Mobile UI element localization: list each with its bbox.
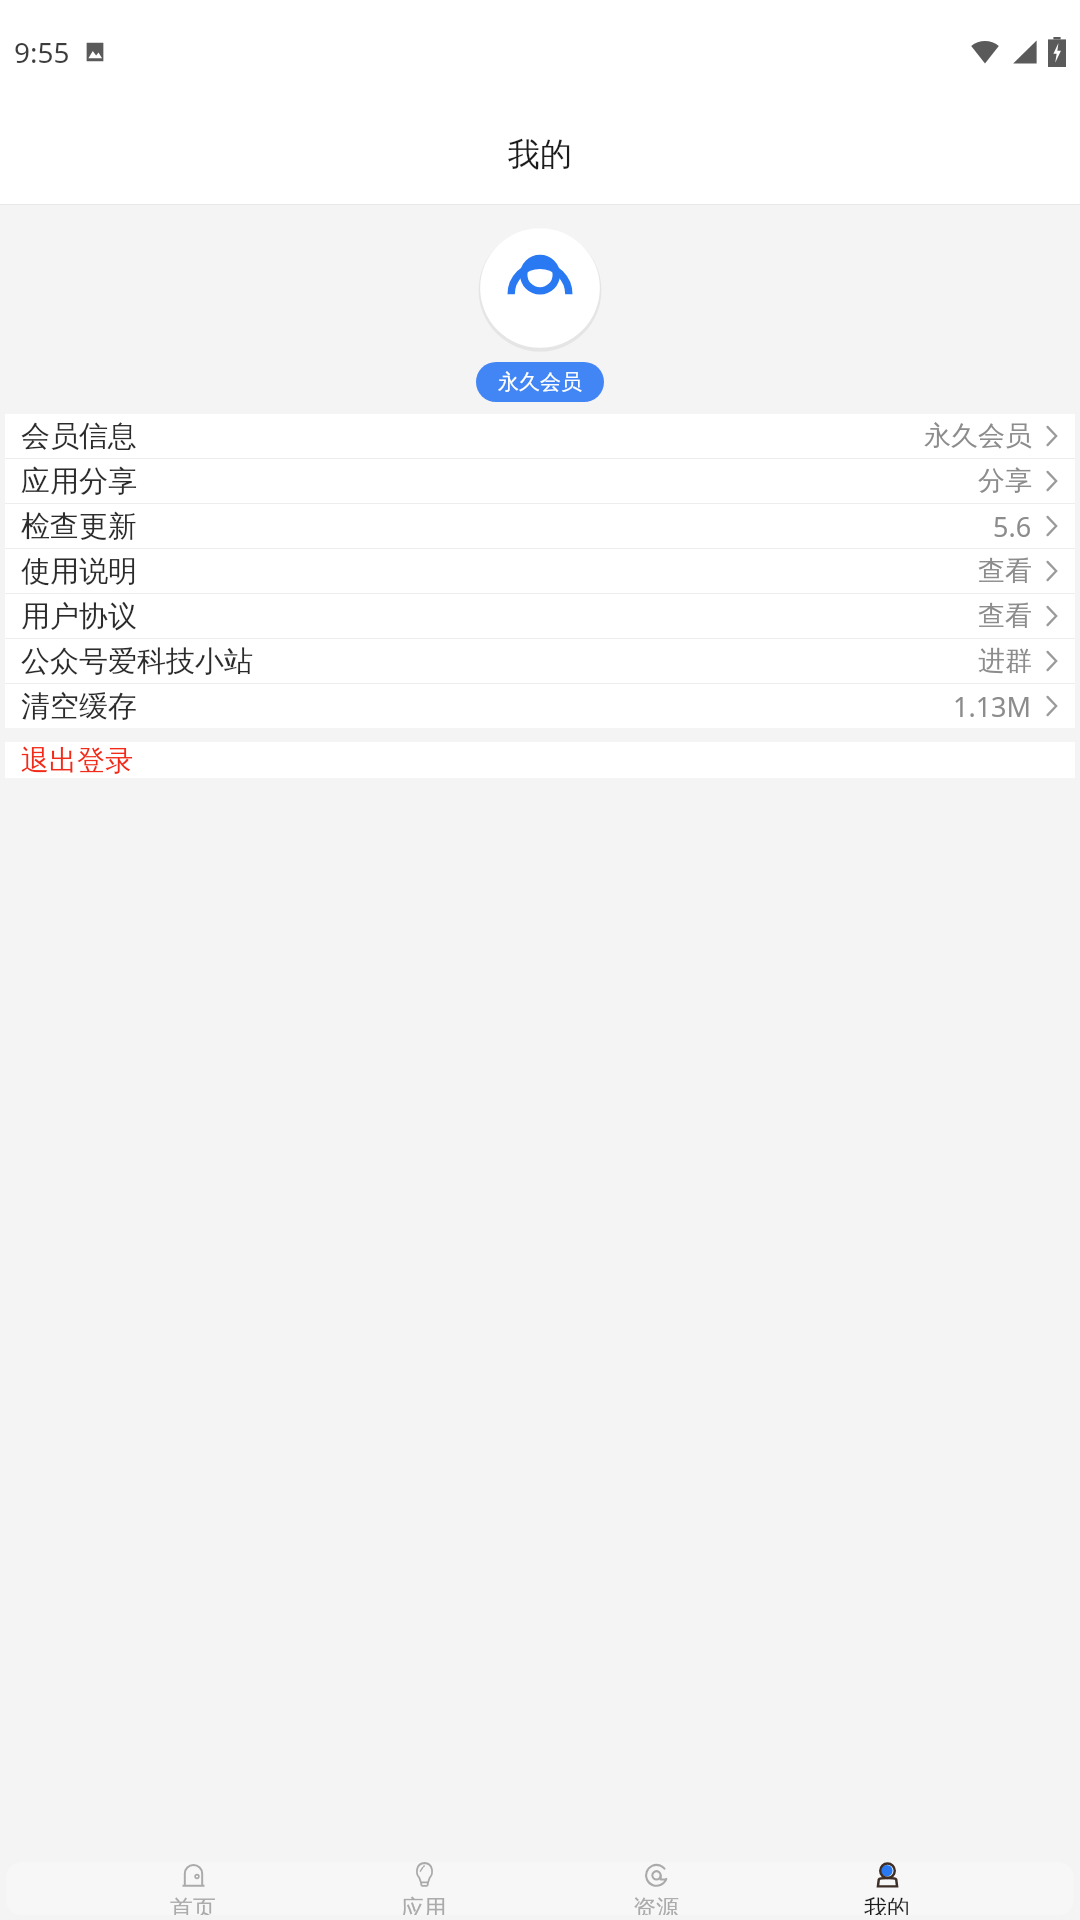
- staticText: 检查更新: [21, 508, 137, 545]
- staticText: 公众号爱科技小站: [21, 643, 253, 680]
- staticText: 查看: [978, 554, 1032, 588]
- button[interactable]: Profile avatar: [478, 226, 602, 350]
- staticText: 用户协议: [21, 598, 137, 635]
- staticText: 永久会员: [924, 419, 1032, 453]
- button[interactable]: 用户协议: [5, 594, 1075, 638]
- staticText: 5.6: [993, 508, 1032, 545]
- button[interactable]: Mine: [842, 1862, 932, 1915]
- staticText: 进群: [978, 644, 1032, 678]
- staticText: 9:55: [14, 33, 70, 71]
- other: Home: [179, 1862, 208, 1891]
- button[interactable]: 退出登录: [5, 742, 1075, 778]
- staticText: 我的: [508, 134, 572, 174]
- other: Resources: [642, 1862, 671, 1891]
- staticText: 资源: [633, 1894, 679, 1915]
- staticText: 我的: [864, 1894, 910, 1915]
- staticText: 1.13M: [953, 688, 1032, 725]
- staticText: 清空缓存: [21, 688, 137, 725]
- button[interactable]: 清空缓存: [5, 684, 1075, 728]
- button[interactable]: 检查更新: [5, 504, 1075, 548]
- staticText: 退出登录: [21, 743, 133, 778]
- button[interactable]: Apps: [379, 1862, 469, 1915]
- button[interactable]: 会员信息: [5, 414, 1075, 458]
- staticText: 会员信息: [21, 418, 137, 455]
- button[interactable]: 永久会员: [476, 362, 604, 402]
- other: Apps: [410, 1862, 439, 1891]
- button[interactable]: Resources: [611, 1862, 701, 1915]
- staticText: 使用说明: [21, 553, 137, 590]
- other: Mine: [873, 1862, 902, 1891]
- staticText: 首页: [170, 1894, 216, 1915]
- staticText: 分享: [978, 464, 1032, 498]
- staticText: 永久会员: [498, 369, 582, 395]
- staticText: 应用分享: [21, 463, 137, 500]
- button[interactable]: Home: [148, 1862, 238, 1915]
- button[interactable]: 使用说明: [5, 549, 1075, 593]
- staticText: 应用: [401, 1894, 447, 1915]
- button[interactable]: 公众号爱科技小站: [5, 639, 1075, 683]
- button[interactable]: 应用分享: [5, 459, 1075, 503]
- staticText: 查看: [978, 599, 1032, 633]
